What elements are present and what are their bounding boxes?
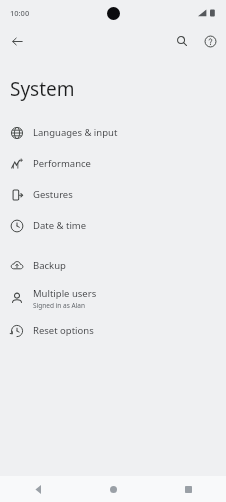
staticText: Signed in as Alan — [33, 301, 85, 310]
staticText: Performance — [33, 157, 91, 170]
button[interactable]: Reset options — [0, 315, 226, 346]
staticText: Backup — [33, 259, 66, 272]
button[interactable]: Back — [5, 29, 29, 53]
button[interactable]: Performance — [0, 148, 226, 179]
staticText: Languages & input — [33, 126, 118, 139]
button[interactable]: Backup — [0, 250, 226, 281]
staticText: Gestures — [33, 188, 73, 201]
button[interactable]: Back — [0, 476, 76, 502]
staticText: System — [10, 76, 75, 102]
button[interactable]: Gestures — [0, 179, 226, 210]
staticText: Multiple users — [33, 287, 97, 300]
staticText: 10:00 — [10, 8, 30, 18]
button[interactable]: Search — [170, 29, 194, 53]
button[interactable]: Multiple users — [0, 281, 226, 315]
button[interactable]: Languages & input — [0, 117, 226, 148]
button[interactable]: Date & time — [0, 210, 226, 241]
staticText: Reset options — [33, 324, 94, 337]
button[interactable]: Recent apps — [151, 476, 226, 502]
button[interactable]: Help — [198, 29, 222, 53]
button[interactable]: Home — [76, 476, 151, 502]
staticText: Date & time — [33, 219, 87, 232]
